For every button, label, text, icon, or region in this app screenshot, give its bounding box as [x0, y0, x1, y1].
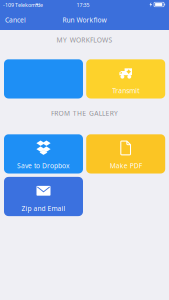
staticText: Cancel	[5, 15, 26, 24]
staticText: Save to Dropbox	[17, 161, 70, 170]
staticText: FROM THE GALLERY	[51, 109, 118, 118]
staticText: Make PDF	[110, 161, 142, 170]
staticText: -109 Telekom.de	[3, 1, 43, 8]
staticText: Zip and Email	[21, 204, 65, 213]
staticText: Transmit	[112, 86, 139, 95]
staticText: 17:35	[76, 1, 89, 8]
button[interactable]: Workflow	[4, 59, 83, 98]
button[interactable]: Zip and Email	[4, 177, 83, 216]
staticText: Run Workflow	[62, 15, 106, 24]
button[interactable]: Transmit	[86, 59, 165, 98]
button[interactable]: Make PDF	[86, 134, 165, 173]
button[interactable]: Cancel	[0, 9, 28, 30]
staticText: MY WORKFLOWS	[57, 35, 112, 44]
button[interactable]: Save to Dropbox	[4, 134, 83, 173]
